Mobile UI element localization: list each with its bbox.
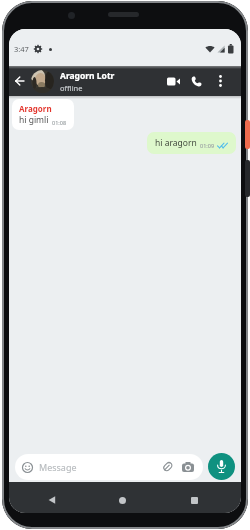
button[interactable]: Aragorn Lotr <box>60 70 161 93</box>
button[interactable]: hi aragorn <box>147 132 236 154</box>
staticText: Aragorn Lotr <box>60 70 115 82</box>
staticText: hi gimli <box>19 114 49 126</box>
button[interactable] <box>182 488 206 512</box>
staticText: Message <box>39 461 77 473</box>
staticText: offline <box>60 83 83 93</box>
button[interactable]: Aragorn <box>12 99 74 130</box>
button[interactable] <box>185 66 207 96</box>
button[interactable]: Message <box>15 454 203 480</box>
button[interactable] <box>208 453 235 480</box>
button[interactable] <box>9 66 31 96</box>
button[interactable] <box>31 70 54 93</box>
staticText: 01:08 <box>52 119 67 126</box>
button[interactable] <box>40 488 64 512</box>
button[interactable] <box>161 66 185 96</box>
staticText: hi aragorn <box>155 137 197 149</box>
button[interactable] <box>207 66 233 96</box>
button[interactable] <box>110 488 134 512</box>
staticText: Aragorn <box>19 103 52 114</box>
staticText: 3:47 <box>14 44 29 54</box>
staticText: 01:09 <box>200 142 215 149</box>
